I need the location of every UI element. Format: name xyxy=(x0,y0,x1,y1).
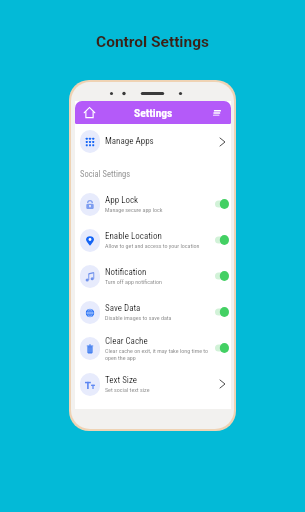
staticText: Clear cache on exit, it may take long ti… xyxy=(105,347,213,361)
button[interactable]: Toggle Notification xyxy=(214,269,229,283)
staticText: Set social text size xyxy=(105,386,150,393)
staticText: Text Size xyxy=(105,375,137,386)
button[interactable]: Notification xyxy=(75,258,231,294)
button[interactable]: Toggle Clear Cache xyxy=(214,341,229,355)
staticText: Allow to get and access to your location xyxy=(105,242,200,249)
staticText: Save Data xyxy=(105,303,141,314)
button[interactable]: Home xyxy=(81,104,98,121)
button[interactable]: Open Manage Apps xyxy=(215,135,229,149)
staticText: Settings xyxy=(134,106,173,119)
staticText: App Lock xyxy=(105,195,139,206)
staticText: Social Settings xyxy=(80,169,131,179)
button[interactable]: Open Text Size xyxy=(215,377,229,391)
button[interactable]: Clear Cache xyxy=(75,330,231,366)
staticText: Manage secure app lock xyxy=(105,206,163,213)
button[interactable]: Save Data xyxy=(75,294,231,330)
staticText: Disable images to save data xyxy=(105,314,172,321)
staticText: Control Settings xyxy=(96,33,209,51)
button[interactable]: Text Size xyxy=(75,366,231,402)
staticText: Enable Location xyxy=(105,231,162,242)
staticText: Manage Apps xyxy=(105,136,154,147)
button[interactable]: Manage Apps xyxy=(75,124,231,159)
button[interactable]: Menu xyxy=(208,104,225,121)
button[interactable]: Toggle App Lock xyxy=(214,197,229,211)
button[interactable]: Toggle Enable Location xyxy=(214,233,229,247)
staticText: Turn off app notification xyxy=(105,278,162,285)
button[interactable]: Enable Location xyxy=(75,222,231,258)
staticText: Notification xyxy=(105,267,147,278)
staticText: Clear Cache xyxy=(105,336,148,347)
button[interactable]: Toggle Save Data xyxy=(214,305,229,319)
button[interactable]: App Lock xyxy=(75,186,231,222)
